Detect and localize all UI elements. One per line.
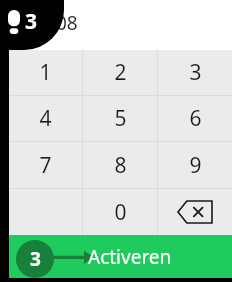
- staticText: 3: [25, 7, 38, 36]
- staticText: 8: [114, 151, 127, 180]
- staticText: 3: [30, 246, 41, 272]
- button[interactable]: 3: [9, 235, 232, 278]
- button[interactable]: Backspace: [158, 189, 232, 235]
- staticText: 1: [39, 58, 52, 87]
- button[interactable]: 6: [158, 96, 232, 141]
- button[interactable]: 4: [9, 96, 82, 141]
- button[interactable]: 3: [158, 50, 232, 95]
- staticText: Activeren: [88, 244, 172, 270]
- button[interactable]: 9: [158, 142, 232, 188]
- staticText: 6: [189, 104, 202, 133]
- staticText: 5: [114, 104, 127, 133]
- button[interactable]: 1: [9, 50, 82, 95]
- button[interactable]: 5: [83, 96, 157, 141]
- other: Step: [8, 10, 20, 34]
- staticText: 2: [114, 58, 127, 87]
- button[interactable]: 2: [83, 50, 157, 95]
- staticText: 3: [189, 58, 202, 87]
- staticText: 4: [39, 104, 52, 133]
- staticText: 7: [39, 151, 52, 180]
- button[interactable]: 7: [9, 142, 82, 188]
- staticText: 9: [189, 151, 202, 180]
- staticText: 08: [56, 10, 78, 36]
- button[interactable]: 0: [83, 189, 157, 235]
- button[interactable]: 8: [83, 142, 157, 188]
- staticText: 0: [114, 198, 127, 227]
